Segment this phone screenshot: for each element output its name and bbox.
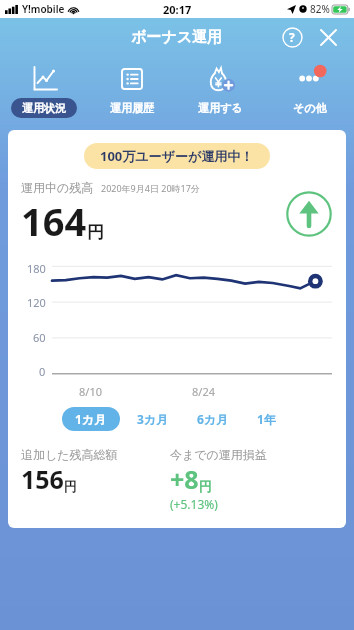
button[interactable]: 運用する	[176, 62, 265, 120]
staticText: 156	[21, 462, 64, 496]
staticText: 運用する	[198, 101, 243, 115]
staticText: (+5.13%)	[170, 496, 218, 512]
staticText: 20:17	[163, 2, 192, 17]
staticText: 円	[87, 222, 104, 243]
staticText: その他	[293, 101, 327, 115]
button[interactable]: 運用状況	[0, 62, 88, 120]
button[interactable]: 6カ月	[192, 407, 234, 431]
staticText: 運用中の残高	[21, 180, 94, 195]
staticText: 運用履歴	[110, 101, 154, 115]
staticText: 8/10	[79, 384, 102, 399]
staticText: 円	[199, 478, 212, 494]
staticText: 追加した残高総額	[21, 447, 118, 462]
staticText: 82%	[310, 2, 330, 16]
staticText: +8	[170, 462, 199, 496]
staticText: 1カ月	[75, 411, 107, 427]
staticText: 60	[33, 330, 46, 345]
button[interactable]: ヘルプ	[280, 25, 304, 49]
staticText: 8/24	[192, 384, 215, 399]
staticText: 3カ月	[137, 411, 169, 427]
button[interactable]: 閉じる	[316, 25, 340, 49]
button[interactable]: 1年	[252, 407, 281, 431]
staticText: Y!mobile	[22, 2, 65, 16]
staticText: 100万ユーザーが運用中！	[100, 147, 254, 165]
staticText: 2020年9月4日 20時17分	[101, 182, 200, 194]
staticText: 運用状況	[22, 101, 66, 115]
staticText: ?	[289, 29, 295, 45]
staticText: 180	[27, 261, 46, 276]
staticText: ボーナス運用	[131, 28, 223, 47]
other: 運用実績は増加中	[285, 190, 333, 238]
staticText: 1年	[257, 411, 276, 427]
button[interactable]: 1カ月	[62, 407, 120, 431]
button[interactable]: その他	[265, 62, 354, 120]
staticText: 円	[64, 478, 77, 494]
button[interactable]: 運用履歴	[88, 62, 176, 120]
staticText: 今までの運用損益	[170, 447, 267, 462]
staticText: 6カ月	[197, 411, 229, 427]
button[interactable]: 3カ月	[132, 407, 174, 431]
staticText: 164	[21, 195, 87, 247]
staticText: 0	[39, 364, 46, 379]
staticText: 120	[27, 295, 46, 310]
